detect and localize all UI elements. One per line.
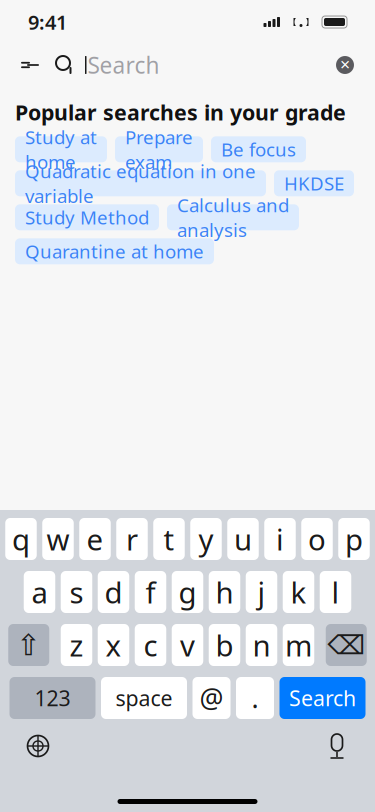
button[interactable]: g	[172, 571, 203, 613]
staticText: n	[252, 625, 270, 664]
button[interactable]: Back	[13, 48, 47, 82]
staticText: u	[234, 519, 252, 558]
button[interactable]: Quadratic equation in one variable	[15, 170, 266, 196]
staticText: 9:41	[28, 9, 67, 35]
button[interactable]: z	[61, 624, 92, 666]
button[interactable]: c	[135, 624, 166, 666]
button[interactable]: n	[246, 624, 277, 666]
button[interactable]: Search	[279, 677, 365, 719]
button[interactable]: r	[116, 518, 148, 560]
staticText: j	[257, 572, 265, 611]
staticText: h	[215, 572, 233, 611]
button[interactable]: h	[209, 571, 240, 613]
button[interactable]: space	[101, 677, 187, 719]
button[interactable]: Prepare exam	[115, 136, 203, 162]
button[interactable]: Study Method	[15, 204, 159, 230]
button[interactable]: Delete	[326, 624, 367, 666]
staticText: m	[285, 625, 312, 664]
staticText: space	[115, 684, 172, 712]
button[interactable]: Change keyboard	[18, 729, 58, 763]
button[interactable]: Be focus	[211, 136, 306, 162]
staticText: f	[145, 572, 155, 611]
staticText: .	[251, 680, 258, 716]
button[interactable]: w	[42, 518, 74, 560]
button[interactable]: Study at home	[15, 136, 107, 162]
staticText: @	[199, 680, 223, 716]
button[interactable]: Dictate	[317, 729, 357, 763]
staticText: p	[345, 519, 363, 558]
staticText: c	[143, 625, 157, 664]
staticText: ⇧	[16, 628, 41, 662]
staticText: o	[308, 519, 326, 558]
staticText: Study at home	[25, 124, 97, 174]
button[interactable]: Quarantine at home	[15, 238, 214, 264]
staticText: ⌫	[327, 630, 365, 660]
button[interactable]: e	[79, 518, 111, 560]
staticText: g	[178, 572, 196, 611]
staticText: x	[105, 625, 121, 664]
staticText: Calculus and analysis	[177, 192, 289, 242]
button[interactable]: d	[98, 571, 129, 613]
staticText: y	[198, 519, 213, 558]
button[interactable]: Clear search	[328, 48, 362, 82]
staticText: r	[126, 519, 138, 558]
button[interactable]: k	[283, 571, 314, 613]
button[interactable]: t	[153, 518, 185, 560]
staticText: 123	[34, 684, 70, 712]
staticText: a	[31, 572, 47, 611]
staticText: ✕	[339, 57, 350, 72]
button[interactable]: x	[98, 624, 129, 666]
staticText: Search	[289, 684, 356, 712]
staticText: Prepare exam	[125, 124, 193, 174]
button[interactable]: u	[227, 518, 259, 560]
staticText: Quadratic equation in one variable	[25, 158, 256, 208]
button[interactable]: 123	[9, 677, 95, 719]
button[interactable]: l	[320, 571, 351, 613]
button[interactable]: a	[24, 571, 55, 613]
button[interactable]: i	[264, 518, 296, 560]
staticText: HKDSE	[284, 171, 344, 196]
button[interactable]: .	[236, 677, 274, 719]
button[interactable]: @	[192, 677, 230, 719]
button[interactable]: q	[5, 518, 37, 560]
button[interactable]: j	[246, 571, 277, 613]
staticText: Quarantine at home	[25, 239, 204, 264]
staticText: v	[180, 625, 195, 664]
staticText: e	[86, 519, 103, 558]
button[interactable]: p	[338, 518, 370, 560]
staticText: q	[12, 519, 30, 558]
button[interactable]: Shift	[8, 624, 49, 666]
button[interactable]: v	[172, 624, 203, 666]
staticText: w	[46, 519, 69, 558]
staticText: b	[215, 625, 233, 664]
staticText: l	[331, 572, 339, 611]
staticText: d	[104, 572, 122, 611]
button[interactable]: HKDSE	[274, 170, 354, 196]
staticText: i	[276, 519, 284, 558]
button[interactable]: Calculus and analysis	[167, 204, 299, 230]
button[interactable]: o	[301, 518, 333, 560]
button[interactable]: b	[209, 624, 240, 666]
staticText: k	[290, 572, 306, 611]
button[interactable]: y	[190, 518, 222, 560]
staticText: z	[69, 625, 83, 664]
staticText: Search	[87, 50, 159, 80]
staticText: s	[69, 572, 83, 611]
staticText: Study Method	[25, 205, 149, 230]
button[interactable]: f	[135, 571, 166, 613]
staticText: t	[163, 519, 174, 558]
staticText: Be focus	[221, 137, 296, 162]
button[interactable]: m	[283, 624, 314, 666]
button[interactable]: s	[61, 571, 92, 613]
staticText: Popular searches in your grade	[15, 98, 346, 126]
